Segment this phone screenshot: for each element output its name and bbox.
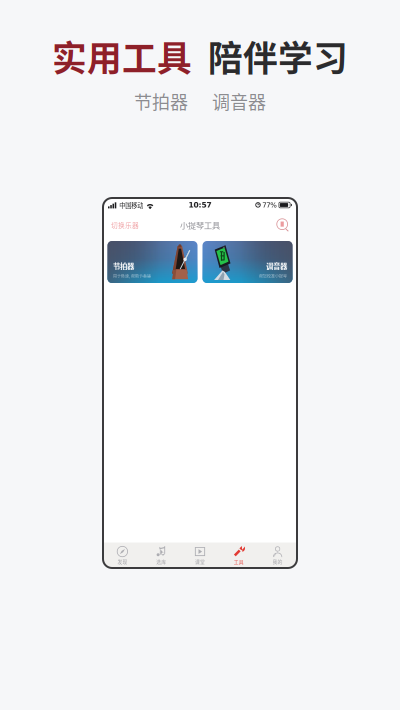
staticText: 小提琴工具	[180, 219, 220, 231]
staticText: 77%	[262, 201, 277, 209]
button[interactable]: 发现	[103, 542, 142, 568]
staticText: 调音器	[266, 261, 287, 272]
staticText: 10:57	[188, 201, 211, 209]
button[interactable]: 切换乐器	[108, 216, 142, 234]
staticText: 节拍器	[134, 88, 188, 114]
button[interactable]: 搜索	[274, 216, 292, 234]
button[interactable]: 调音器	[202, 241, 292, 283]
staticText: 发现	[117, 558, 127, 565]
staticText: 陪伴学习	[192, 31, 348, 81]
staticText: 切换乐器	[111, 220, 139, 230]
staticText: 用于练速, 帮助节奏感	[113, 273, 151, 279]
button[interactable]: 工具	[219, 542, 258, 568]
staticText: 工具	[234, 558, 244, 565]
button[interactable]: 节拍器	[107, 241, 197, 283]
staticText: 调音器	[212, 88, 266, 114]
button[interactable]: 选库	[142, 542, 181, 568]
staticText: 课堂	[195, 558, 205, 565]
staticText: 我的	[273, 558, 283, 565]
staticText: 节拍器	[113, 261, 134, 272]
staticText: 选库	[156, 558, 166, 565]
staticText: 帮您校准小提琴	[259, 273, 287, 279]
staticText: 实用工具	[52, 31, 192, 81]
button[interactable]: 我的	[258, 542, 297, 568]
staticText: 中国移动	[119, 200, 143, 210]
button[interactable]: 课堂	[181, 542, 219, 568]
